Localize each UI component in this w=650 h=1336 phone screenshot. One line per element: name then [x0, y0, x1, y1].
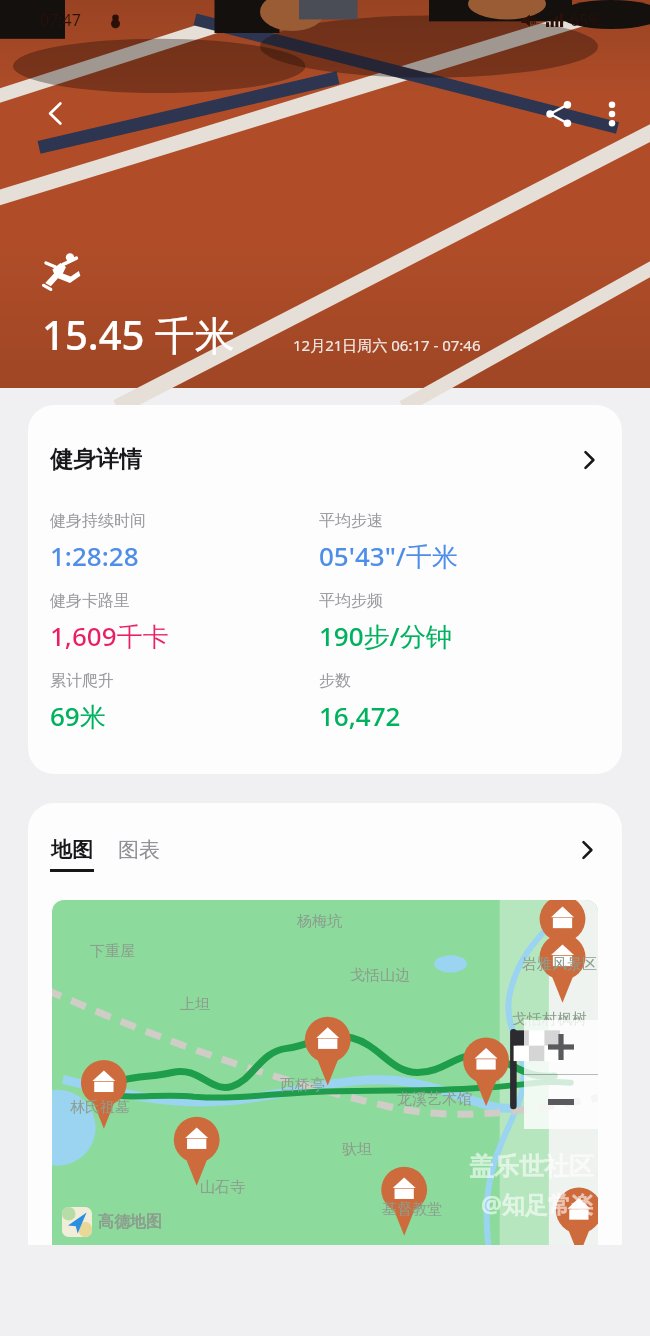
staticText: 西桥亭: [280, 1076, 325, 1095]
staticText: 龙溪艺术馆: [397, 1090, 472, 1109]
staticText: 健身持续时间: [50, 511, 146, 531]
staticText: 上坦: [180, 995, 210, 1014]
staticText: 07:47: [40, 9, 81, 31]
staticText: 05'43"/千米: [319, 538, 458, 574]
button[interactable]: 健身详情: [28, 405, 622, 494]
staticText: 1,609千卡: [50, 618, 169, 654]
staticText: 累计爬升: [50, 671, 114, 691]
staticText: 69米: [50, 698, 106, 734]
staticText: 下重屋: [90, 942, 135, 961]
button[interactable]: Zoom out: [524, 1075, 598, 1129]
staticText: 戈恬村枫树: [512, 1010, 587, 1029]
staticText: 山石寺: [200, 1178, 245, 1197]
staticText: 1:28:28: [50, 538, 139, 573]
staticText: @知足常楽: [481, 1188, 594, 1219]
button[interactable]: Back: [29, 87, 81, 139]
button[interactable]: 地图: [50, 837, 94, 872]
staticText: 戈恬山边: [350, 966, 410, 985]
staticText: 杨梅坑: [297, 912, 342, 931]
button[interactable]: Zoom in: [524, 1020, 598, 1074]
staticText: 65%: [570, 9, 602, 31]
button[interactable]: Share: [532, 87, 586, 141]
staticText: 16,472: [319, 698, 401, 733]
staticText: 12月21日周六 06:17 - 07:46: [293, 335, 481, 355]
staticText: 步数: [319, 671, 351, 691]
staticText: 地图: [51, 837, 93, 863]
staticText: 15.45 千米: [42, 307, 235, 362]
button[interactable]: Open map: [574, 837, 600, 863]
staticText: 平均步频: [319, 591, 383, 611]
button[interactable]: 图表: [118, 837, 160, 872]
staticText: 高德地图: [98, 1212, 162, 1232]
button[interactable]: More options: [586, 88, 638, 140]
staticText: 驮坦: [342, 1140, 372, 1159]
staticText: 平均步速: [319, 511, 383, 531]
staticText: 盖乐世社区: [469, 1151, 594, 1182]
button[interactable]: 下重屋: [52, 900, 598, 1245]
staticText: 岩雅风景区: [522, 955, 597, 974]
staticText: 林氏祖墓: [70, 1098, 130, 1117]
staticText: 190步/分钟: [319, 618, 452, 654]
staticText: 健身详情: [50, 445, 142, 474]
staticText: 健身卡路里: [50, 591, 130, 611]
staticText: 基督教堂: [382, 1200, 442, 1219]
